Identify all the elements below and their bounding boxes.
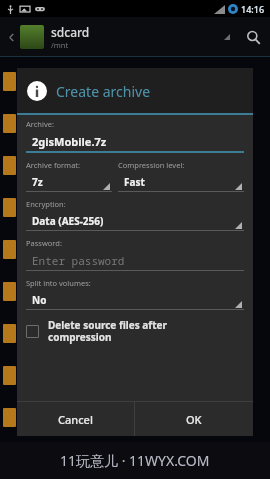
button[interactable]: 7z [26,172,112,192]
button[interactable]: Delete source files after compression [26,318,244,344]
button[interactable]: Up [4,30,18,44]
staticText: Archive format: [26,160,81,170]
staticText: Cancel [58,412,93,427]
staticText: sdcard [51,24,90,40]
button[interactable]: Fast [118,172,244,192]
button[interactable]: Data (AES-256) [26,211,244,231]
button[interactable]: Cancel [17,402,134,436]
staticText: Encryption: [26,199,66,209]
button[interactable]: Search [240,24,266,50]
staticText: 14:16 [241,3,265,15]
button[interactable]: sdcard [51,24,220,50]
button[interactable]: 2gisMobile.7z [26,131,244,153]
staticText: OK [186,412,202,427]
button[interactable]: OK [135,402,253,436]
staticText: Fast [124,175,145,189]
staticText: /mnt [51,40,69,50]
staticText: 7z [32,175,43,189]
staticText: Enter password [32,253,125,268]
button[interactable]: No [26,290,244,310]
staticText: Split into volumes: [26,278,91,288]
staticText: Compression level: [118,160,185,170]
staticText: Password: [26,238,62,248]
staticText: No [32,293,47,307]
staticText: Create archive [56,82,151,101]
staticText: 11玩意儿 · 11WYX.COM [60,451,210,470]
button[interactable]: Enter password [26,250,244,271]
staticText: Delete source files after compression [48,318,167,344]
staticText: Data (AES-256) [32,214,104,228]
staticText: 2gisMobile.7z [32,134,107,149]
staticText: Archive: [26,119,54,129]
button[interactable]: More options [220,30,234,44]
